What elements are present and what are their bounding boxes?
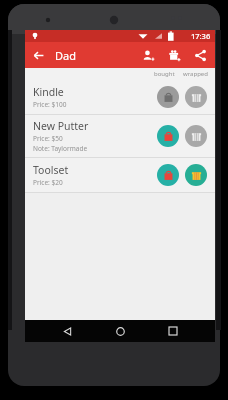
staticText: Price: $50 [33, 134, 63, 143]
button[interactable]: Kindle [25, 80, 215, 114]
button[interactable]: Share [187, 42, 213, 68]
staticText: New Putter [33, 119, 89, 133]
button[interactable]: Wrapped toggle [185, 86, 207, 108]
button[interactable]: Add person [135, 42, 161, 68]
button[interactable]: Bought toggle [157, 86, 179, 108]
button[interactable]: Add gift [161, 42, 187, 68]
button[interactable]: Bought toggle [157, 164, 179, 186]
button[interactable]: Bought toggle [157, 125, 179, 147]
button[interactable]: Wrapped toggle [185, 164, 207, 186]
button[interactable]: Toolset [25, 158, 215, 192]
button[interactable]: Back [25, 42, 51, 68]
staticText: Note: Taylormade [33, 144, 88, 153]
button[interactable]: Back [56, 320, 78, 342]
staticText: Kindle [33, 85, 64, 99]
button[interactable]: Recents [162, 320, 184, 342]
staticText: Toolset [33, 163, 69, 177]
button[interactable]: New Putter [25, 115, 215, 157]
staticText: Dad [55, 48, 76, 63]
staticText: Price: $100 [33, 100, 67, 109]
button[interactable]: Wrapped toggle [185, 125, 207, 147]
button[interactable]: Home [109, 320, 131, 342]
staticText: 17:36 [191, 31, 211, 41]
staticText: wrapped [183, 70, 208, 78]
staticText: Price: $20 [33, 178, 63, 187]
staticText: bought [154, 70, 175, 78]
